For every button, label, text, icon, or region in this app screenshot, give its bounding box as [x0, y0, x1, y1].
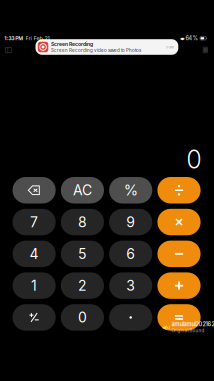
staticText: 9 — [126, 214, 135, 230]
staticText: amulamul202162 — [171, 321, 214, 327]
button[interactable]: 8 — [61, 209, 104, 235]
button[interactable]: AC — [61, 177, 104, 203]
button[interactable]: Decimal point — [109, 304, 152, 331]
staticText: 3 — [126, 277, 135, 294]
staticText: 2 — [78, 277, 87, 294]
staticText: Screen Recording — [51, 41, 93, 47]
button[interactable]: Plus minus — [12, 304, 56, 331]
button[interactable]: 9 — [109, 209, 152, 235]
staticText: 7 — [30, 214, 38, 230]
staticText: now — [165, 44, 173, 50]
button[interactable]: 0 — [61, 304, 104, 331]
staticText: 1:33 PM — [4, 35, 23, 42]
staticText: 1 — [31, 277, 37, 294]
button[interactable]: Device — [202, 47, 208, 53]
button[interactable]: Equals — [157, 304, 201, 331]
button[interactable]: Add — [157, 272, 201, 299]
button[interactable]: 4 — [12, 241, 56, 267]
staticText: Screen Recording video saved to Photos — [51, 47, 141, 53]
button[interactable]: Subtract — [157, 241, 201, 267]
staticText: 64% — [185, 35, 197, 42]
button[interactable]: 6 — [109, 241, 152, 267]
button[interactable]: Divide — [157, 177, 201, 203]
button[interactable]: Delete — [12, 177, 56, 203]
button[interactable]: Split view — [5, 47, 12, 53]
staticText: AC — [73, 182, 92, 199]
button[interactable]: % — [109, 177, 152, 203]
button[interactable]: 7 — [12, 209, 56, 235]
button[interactable]: Multiply — [157, 209, 201, 235]
button[interactable]: 5 — [61, 241, 104, 267]
button[interactable]: Screen Recording — [35, 39, 178, 55]
staticText: 8 — [78, 214, 87, 230]
button[interactable]: 2 — [61, 272, 104, 299]
button[interactable]: 3 — [109, 272, 152, 299]
staticText: 6 — [126, 245, 135, 262]
staticText: Fri Feb 21 — [25, 35, 49, 42]
button[interactable]: 1 — [12, 272, 56, 299]
staticText: 4 — [30, 245, 39, 262]
staticText: 0 — [78, 309, 87, 326]
staticText: 5 — [78, 245, 87, 262]
staticText: 0 — [186, 145, 201, 174]
staticText: % — [124, 181, 138, 199]
staticText: Original Sound — [171, 328, 204, 333]
